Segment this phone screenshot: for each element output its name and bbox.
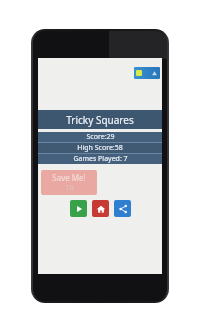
staticText: 10: [65, 183, 74, 193]
button[interactable]: Share: [114, 200, 131, 217]
button[interactable]: Play: [70, 200, 87, 217]
staticText: Games Played: 7: [73, 154, 128, 164]
staticText: Tricky Squares: [66, 113, 134, 127]
button[interactable]: Save Me!: [41, 170, 97, 195]
button[interactable]: Advertisement banner: [134, 67, 160, 79]
staticText: Save Me!: [52, 172, 86, 183]
staticText: High Score:58: [77, 143, 123, 153]
staticText: Score:29: [86, 132, 115, 142]
button[interactable]: Home: [92, 200, 109, 217]
